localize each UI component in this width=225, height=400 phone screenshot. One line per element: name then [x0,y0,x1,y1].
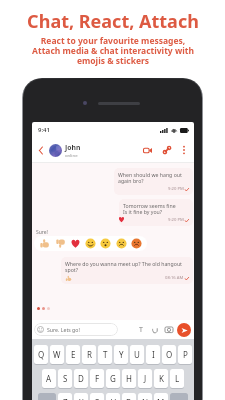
staticText: Tomorrow seems fine Is it fine by you? [123,202,189,216]
staticText: T [103,349,108,360]
staticText: E [71,349,76,360]
staticText: I [152,349,155,360]
button[interactable]: O [162,345,176,364]
button[interactable]: I [146,345,160,364]
button[interactable]: X [74,393,88,400]
button[interactable]: N [138,393,152,400]
staticText: P [183,349,188,360]
staticText: W [53,349,61,360]
button[interactable]: Angry [131,238,142,249]
button[interactable]: W [50,345,64,364]
staticText: F [95,373,100,384]
staticText: K [159,373,164,384]
staticText: 9:41 [38,126,50,134]
button[interactable]: G [106,369,120,388]
button[interactable]: Attach file [149,324,160,335]
button[interactable]: Camera [163,324,174,335]
staticText: 08:16 AM [165,275,184,281]
staticText: C [94,397,100,400]
button[interactable]: Heart [70,238,81,249]
button[interactable]: S [58,369,72,388]
button[interactable]: T [98,345,112,364]
staticText: Chat, React, Attach [27,9,199,34]
button[interactable]: R [82,345,96,364]
button[interactable]: A [42,369,56,388]
staticText: Sure! [36,229,48,236]
button[interactable]: Surprised [100,238,111,249]
button[interactable]: Send [177,323,191,337]
staticText: When should we hang out again bro? [118,171,189,185]
staticText: 9:20 PM [168,217,184,223]
button[interactable]: Thumbs down [55,238,66,249]
button[interactable]: D [74,369,88,388]
button[interactable]: Smile [85,238,96,249]
button[interactable]: U [130,345,144,364]
button[interactable]: Sad [116,238,127,249]
button[interactable]: K [154,369,168,388]
button[interactable]: B [122,393,136,400]
staticText: 9:20 PM [168,186,184,192]
button[interactable]: H [122,369,136,388]
staticText: A [46,373,52,384]
staticText: T [139,325,143,335]
button[interactable]: Back [35,145,46,156]
staticText: Z [63,397,68,400]
button[interactable]: J [138,369,152,388]
staticText: online [65,152,78,158]
button[interactable]: Call [160,143,174,157]
staticText: Where do you wanna meet up? The old hang… [65,260,189,274]
staticText: Y [119,349,124,360]
staticText: V [111,397,116,400]
button[interactable]: Backspace [170,393,188,400]
button[interactable]: M [154,393,168,400]
button[interactable]: Sure. Lets go! [34,323,118,336]
button[interactable]: F [90,369,104,388]
button[interactable]: Format text [135,324,146,335]
staticText: Q [38,349,45,360]
button[interactable]: E [66,345,80,364]
staticText: John [65,143,81,152]
button[interactable]: P [178,345,192,364]
staticText: B [126,397,132,400]
button[interactable]: Shift [38,393,56,400]
staticText: O [166,349,173,360]
staticText: X [79,397,84,400]
staticText: J [144,373,147,384]
button[interactable]: V [106,393,120,400]
staticText: Sure. Lets go! [47,326,80,333]
staticText: React to your favourite messages, Attach… [32,35,194,66]
staticText: U [134,349,140,360]
button[interactable]: Z [58,393,72,400]
staticText: R [87,349,92,360]
button[interactable]: Y [114,345,128,364]
staticText: S [63,373,68,384]
button[interactable]: L [170,369,184,388]
staticText: M [157,397,165,400]
button[interactable]: Thumbs up [39,238,50,249]
staticText: D [78,373,84,384]
button[interactable]: C [90,393,104,400]
staticText: G [110,373,116,384]
staticText: H [126,373,132,384]
button[interactable]: More options [179,145,189,155]
button[interactable]: Q [34,345,48,364]
staticText: N [142,397,149,400]
staticText: L [175,373,180,384]
button[interactable]: Video call [140,143,154,157]
